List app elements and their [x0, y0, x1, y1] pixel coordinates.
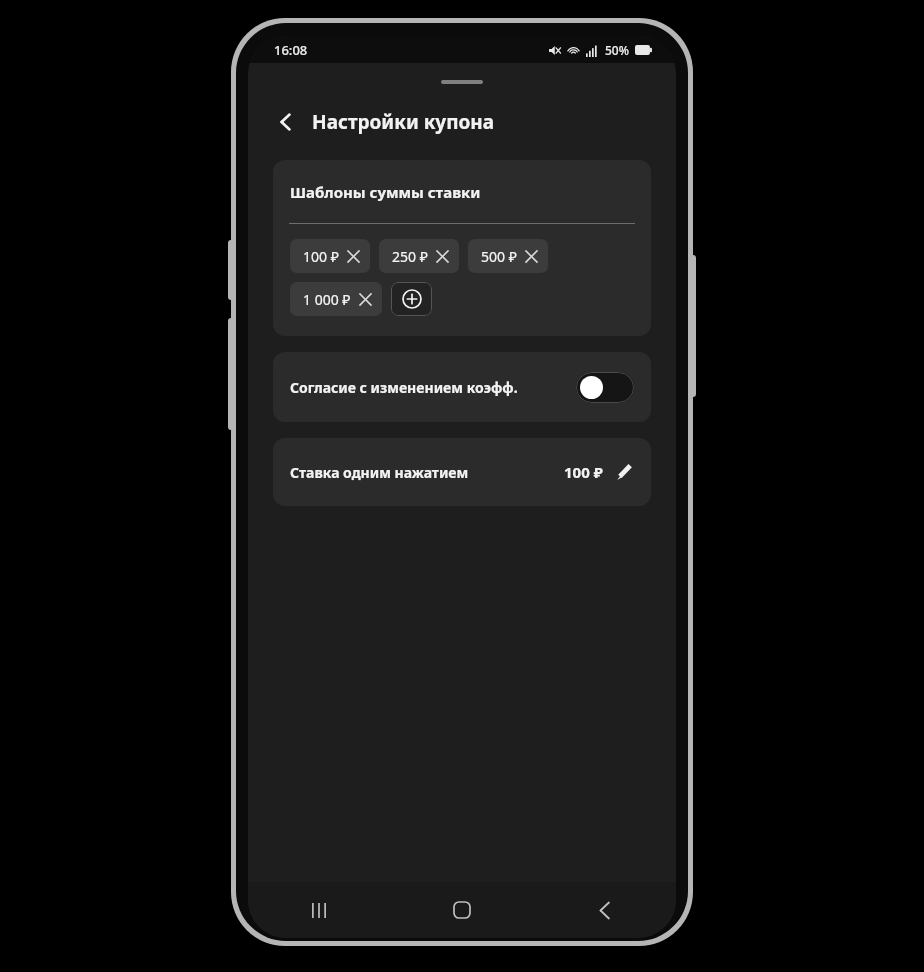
staticText: 50% [605, 42, 629, 58]
staticText: 100 ₽ [303, 247, 339, 266]
staticText: 500 ₽ [481, 247, 517, 266]
staticText: 250 ₽ [392, 247, 428, 266]
button[interactable]: Назад [533, 882, 676, 938]
button[interactable]: Редактировать [611, 459, 637, 485]
staticText: Согласие с изменением коэфф. [290, 378, 576, 397]
button[interactable]: Согласие с изменением коэффициента [576, 372, 634, 403]
button[interactable]: Домой [390, 882, 533, 938]
staticText: 16:08 [274, 41, 308, 59]
button[interactable]: 1 000 ₽ [290, 282, 382, 316]
staticText: Настройки купона [312, 109, 495, 135]
button[interactable]: 250 ₽ [379, 239, 459, 273]
staticText: 100 ₽ [564, 462, 603, 482]
button[interactable]: Последние приложения [248, 882, 390, 938]
button[interactable]: Добавить шаблон [391, 282, 432, 316]
button[interactable]: Назад [266, 102, 306, 142]
button[interactable]: 500 ₽ [468, 239, 548, 273]
staticText: 1 000 ₽ [303, 290, 351, 309]
staticText: Шаблоны суммы ставки [290, 182, 481, 202]
button[interactable]: Согласие с изменением коэфф. [273, 352, 651, 422]
staticText: Ставка одним нажатием [290, 463, 564, 482]
button[interactable]: 100 ₽ [290, 239, 370, 273]
button[interactable]: Ставка одним нажатием [273, 438, 651, 506]
